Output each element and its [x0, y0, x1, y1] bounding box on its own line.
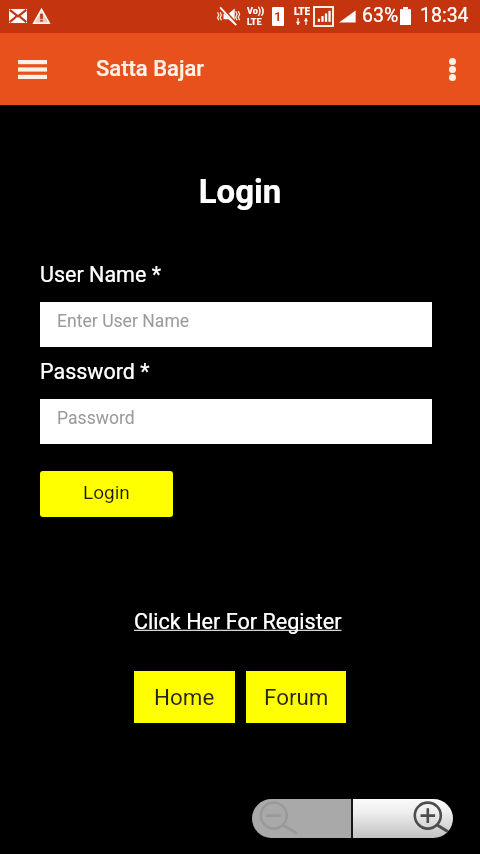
- staticText: Login: [83, 481, 130, 503]
- button[interactable]: Click Her For Register: [134, 609, 342, 634]
- button[interactable]: Enter User Name: [40, 302, 432, 347]
- staticText: Password: [57, 408, 135, 429]
- staticText: LTE: [247, 17, 262, 28]
- button[interactable]: Open navigation menu: [8, 45, 56, 93]
- staticText: Home: [154, 684, 215, 710]
- staticText: Satta Bajar: [96, 56, 205, 82]
- staticText: Login: [0, 172, 480, 211]
- staticText: Enter User Name: [57, 311, 190, 332]
- button[interactable]: Login: [40, 471, 173, 517]
- staticText: LTE: [294, 6, 311, 18]
- button[interactable]: Forum: [246, 671, 346, 723]
- staticText: Vo)): [247, 6, 265, 17]
- button[interactable]: More options: [428, 45, 476, 93]
- staticText: 18:34: [420, 4, 469, 27]
- button[interactable]: Home: [134, 671, 235, 723]
- staticText: Forum: [264, 684, 329, 710]
- button[interactable]: Zoom in: [353, 799, 453, 838]
- staticText: 1: [274, 9, 282, 24]
- staticText: User Name *: [40, 262, 161, 287]
- staticText: Password *: [40, 359, 150, 384]
- button[interactable]: Password: [40, 399, 432, 444]
- staticText: 63%: [362, 4, 399, 27]
- button[interactable]: Zoom out: [252, 799, 351, 838]
